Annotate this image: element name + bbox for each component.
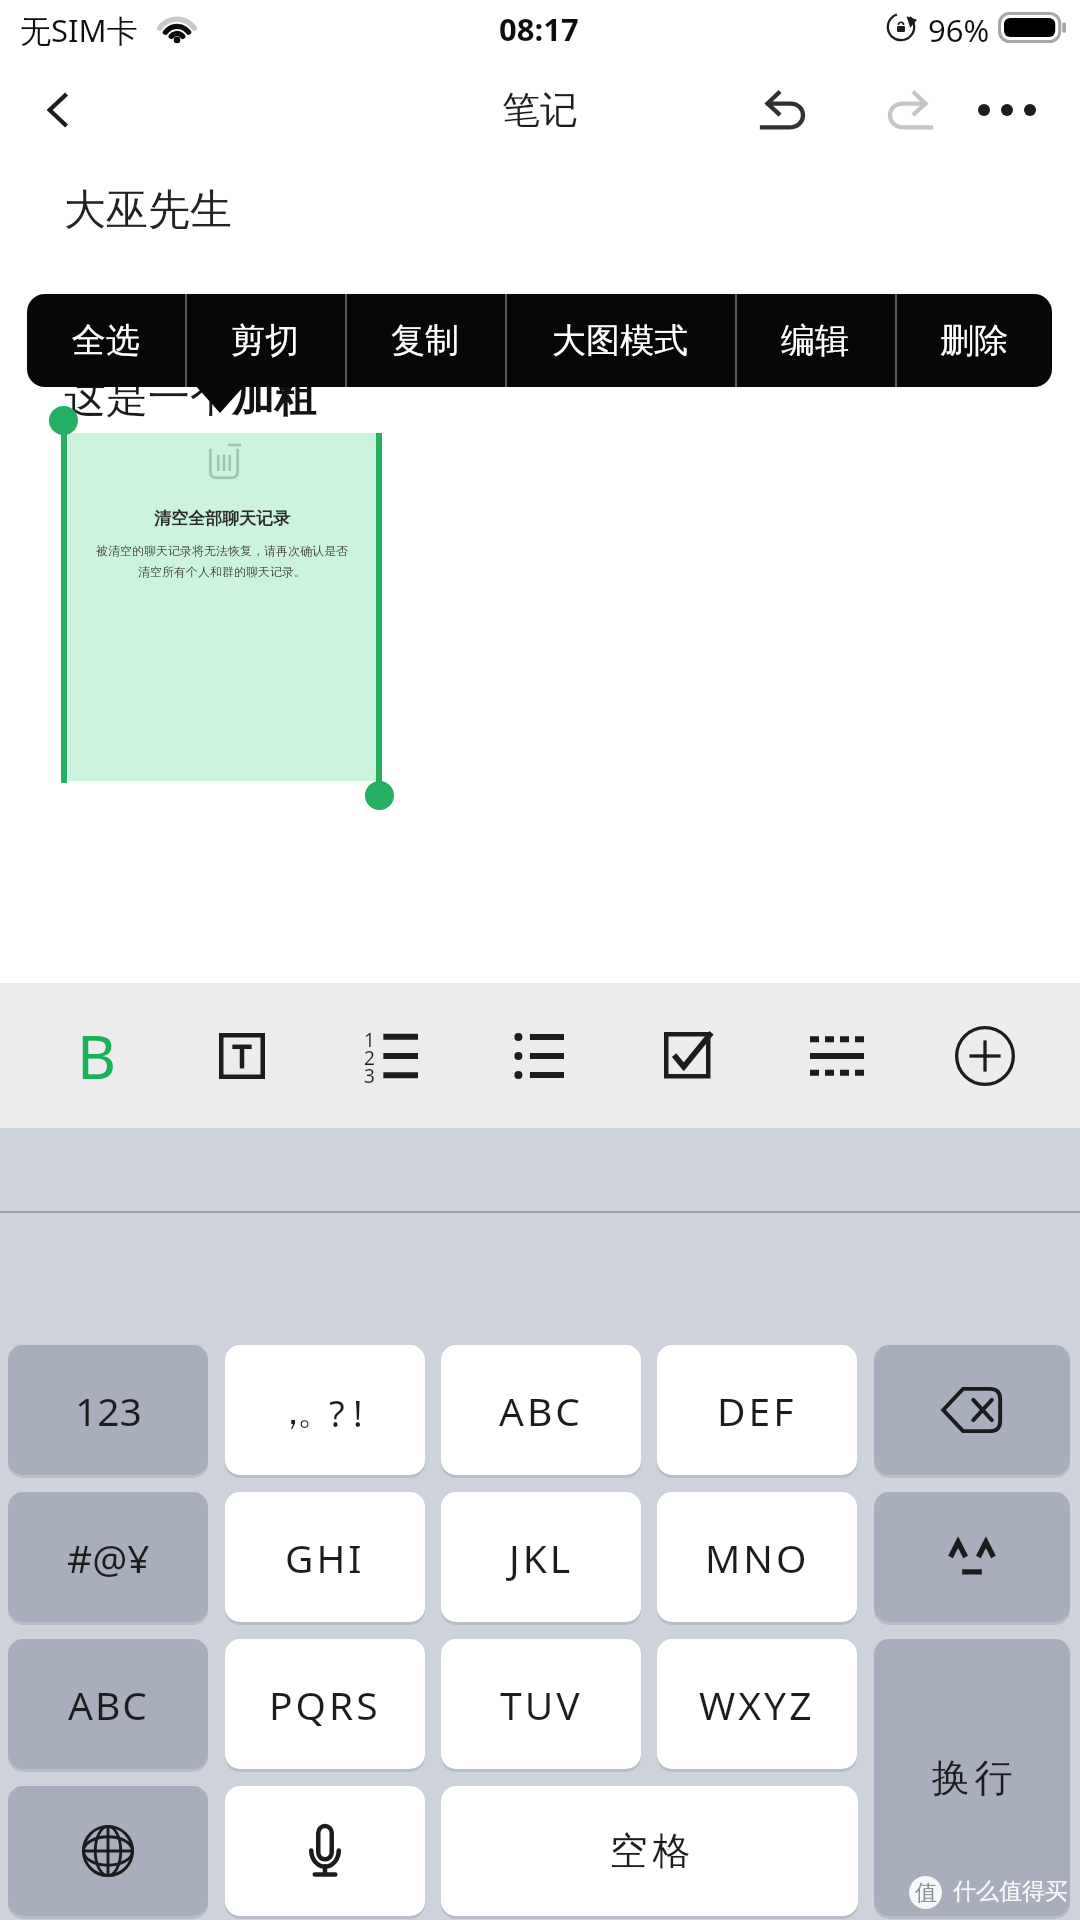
- button[interactable]: Text style: [190, 983, 294, 1128]
- button[interactable]: #@¥: [8, 1492, 208, 1622]
- button[interactable]: Backspace: [874, 1345, 1070, 1475]
- staticText: #@¥: [67, 1531, 150, 1584]
- button[interactable]: 删除: [895, 294, 1052, 387]
- button[interactable]: More options: [957, 58, 1057, 162]
- staticText: 全选: [72, 319, 140, 362]
- button[interactable]: 全选: [27, 294, 185, 387]
- button[interactable]: Back: [6, 58, 110, 162]
- staticText: WXYZ: [699, 1678, 815, 1731]
- staticText: 大巫先生: [64, 184, 232, 237]
- staticText: DEF: [717, 1384, 797, 1437]
- staticText: MNO: [705, 1531, 810, 1584]
- button[interactable]: 大图模式: [505, 294, 735, 387]
- button[interactable]: 换行: [874, 1639, 1070, 1916]
- staticText: !: [353, 1389, 363, 1438]
- staticText: 什么值得买: [953, 1877, 1068, 1906]
- staticText: 大图模式: [552, 319, 688, 362]
- staticText: 换行: [929, 1754, 1015, 1802]
- button[interactable]: Redo: [857, 58, 957, 162]
- staticText: 复制: [391, 319, 459, 362]
- button[interactable]: JKL: [441, 1492, 641, 1622]
- button[interactable]: 剪切: [185, 294, 345, 387]
- button[interactable]: ，: [225, 1345, 425, 1475]
- button[interactable]: GHI: [225, 1492, 425, 1622]
- staticText: TUV: [500, 1678, 583, 1731]
- button[interactable]: DEF: [657, 1345, 857, 1475]
- staticText: 08:17: [499, 8, 579, 50]
- button[interactable]: Emoticon: [874, 1492, 1070, 1622]
- button[interactable]: 空格: [441, 1786, 858, 1916]
- staticText: 编辑: [781, 319, 849, 362]
- staticText: 加粗: [232, 371, 316, 424]
- staticText: 无SIM卡: [20, 9, 138, 51]
- staticText: 96%: [928, 9, 990, 51]
- staticText: 2: [364, 1045, 375, 1071]
- button[interactable]: Undo: [736, 58, 836, 162]
- staticText: 被清空的聊天记录将无法恢复，请再次确认是否 清空所有个人和群的聊天记录。: [68, 543, 376, 580]
- staticText: 这是一个: [64, 371, 232, 424]
- button[interactable]: ABC: [441, 1345, 641, 1475]
- staticText: 剪切: [231, 319, 299, 362]
- staticText: JKL: [509, 1531, 574, 1584]
- staticText: 笔记: [502, 86, 578, 134]
- staticText: 删除: [940, 319, 1008, 362]
- button[interactable]: 编辑: [735, 294, 895, 387]
- button[interactable]: Voice input: [225, 1786, 425, 1916]
- button[interactable]: 复制: [345, 294, 505, 387]
- staticText: ABC: [68, 1678, 149, 1731]
- staticText: GHI: [285, 1531, 365, 1584]
- button[interactable]: ABC: [8, 1639, 208, 1769]
- staticText: 。: [297, 1389, 333, 1434]
- button[interactable]: 123: [8, 1345, 208, 1475]
- button[interactable]: Numbered list: [338, 983, 442, 1128]
- button[interactable]: Divider: [785, 983, 889, 1128]
- staticText: PQRS: [269, 1678, 381, 1731]
- button[interactable]: Switch language: [8, 1786, 208, 1916]
- staticText: B: [77, 1015, 116, 1097]
- button[interactable]: PQRS: [225, 1639, 425, 1769]
- staticText: ABC: [499, 1384, 583, 1437]
- staticText: 清空全部聊天记录: [68, 508, 376, 529]
- staticText: 1: [364, 1027, 375, 1053]
- staticText: 3: [364, 1063, 375, 1089]
- button[interactable]: Checklist: [636, 983, 740, 1128]
- button[interactable]: MNO: [657, 1492, 857, 1622]
- button[interactable]: WXYZ: [657, 1639, 857, 1769]
- button[interactable]: Add: [933, 983, 1037, 1128]
- staticText: ?: [329, 1389, 345, 1438]
- staticText: 值: [915, 1879, 937, 1907]
- staticText: ，: [275, 1389, 311, 1434]
- staticText: 空格: [607, 1827, 693, 1875]
- staticText: 123: [75, 1384, 142, 1437]
- button[interactable]: Bulleted list: [488, 983, 592, 1128]
- button[interactable]: Bold: [44, 983, 148, 1128]
- button[interactable]: TUV: [441, 1639, 641, 1769]
